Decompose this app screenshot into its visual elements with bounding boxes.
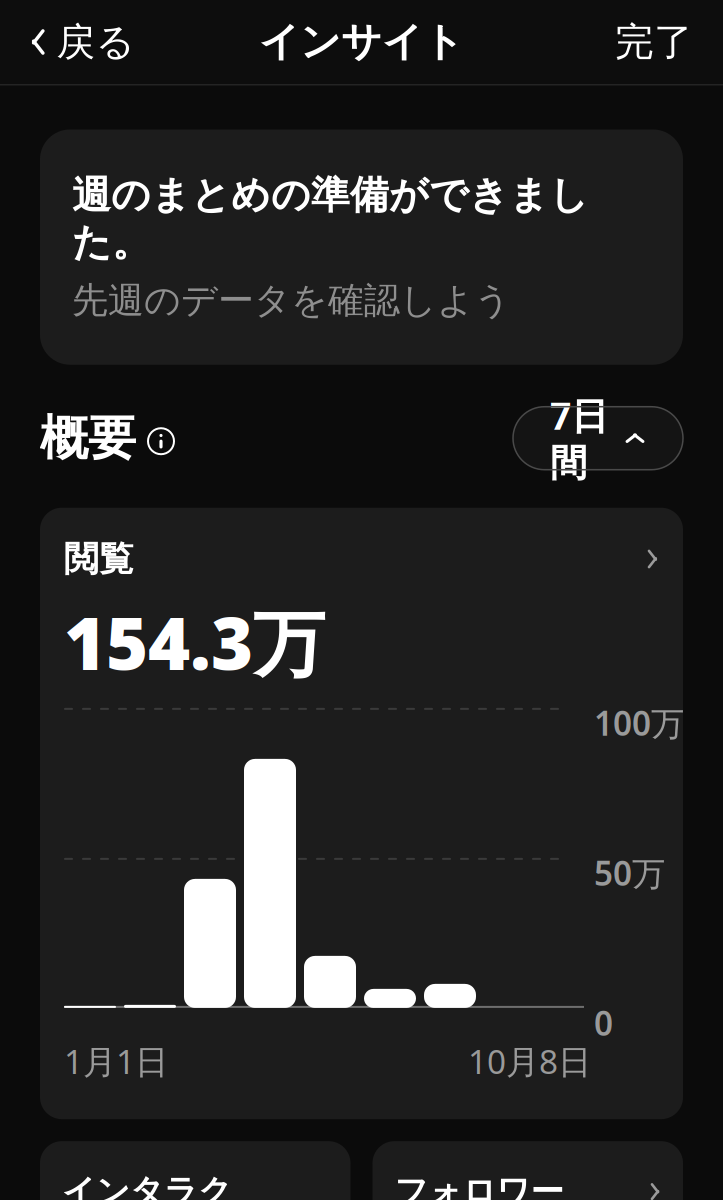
button[interactable]: 完了 — [599, 8, 709, 76]
staticText: 50万 — [594, 851, 665, 895]
staticText: 0 — [594, 1001, 613, 1045]
staticText: インサイト — [259, 17, 464, 66]
button[interactable]: 戻る — [14, 8, 151, 76]
staticText: 概要 — [40, 409, 136, 468]
staticText: 先週のデータを確認しよう — [72, 278, 511, 323]
button[interactable]: 週のまとめの準備ができました。 — [40, 129, 683, 365]
staticText: 154.3万 — [64, 594, 325, 690]
button[interactable]: インタラクション — [40, 1141, 350, 1200]
staticText: 7日間 — [550, 390, 608, 486]
staticText: 戻る — [56, 18, 135, 66]
staticText: 完了 — [615, 18, 693, 66]
staticText: 10月8日 — [468, 1039, 591, 1083]
button[interactable]: フォロワー — [372, 1141, 683, 1200]
staticText: 100万 — [594, 701, 684, 745]
staticText: 閲覧 — [64, 538, 134, 580]
button[interactable]: 7日間 — [513, 407, 683, 470]
button[interactable]: 閲覧 — [64, 538, 659, 580]
staticText: フォロワー — [394, 1171, 563, 1200]
staticText: 週のまとめの準備ができました。 — [72, 171, 589, 266]
staticText: インタラクション — [62, 1171, 232, 1200]
staticText: 1月1日 — [64, 1039, 168, 1083]
